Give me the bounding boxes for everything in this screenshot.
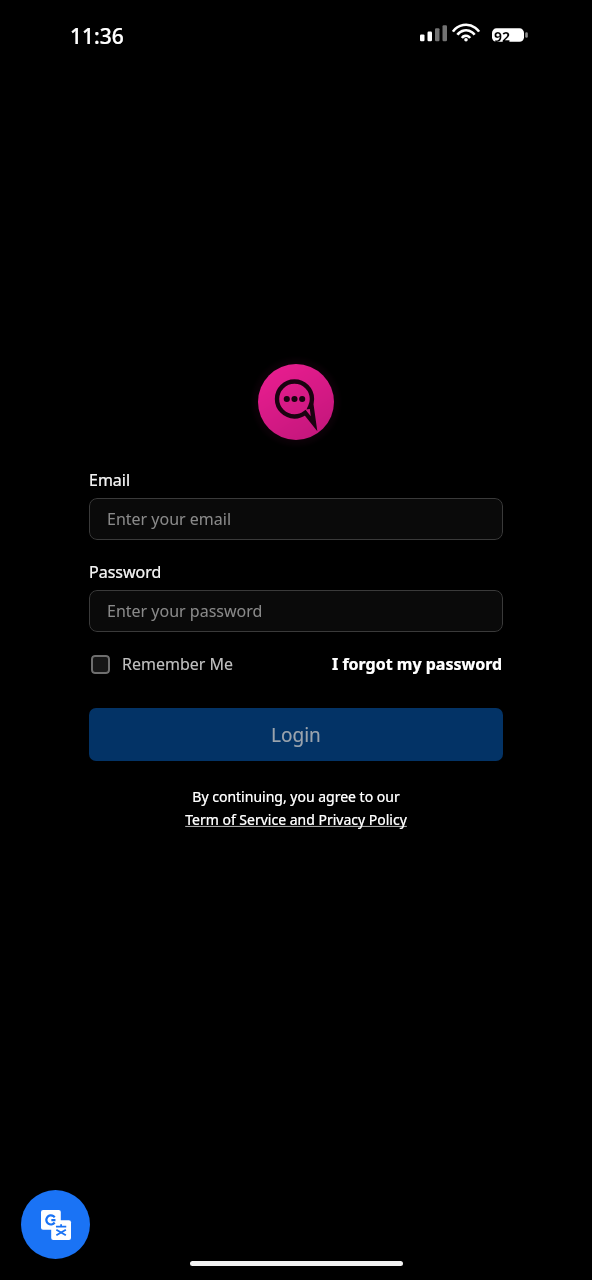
- button[interactable]: Remember Me: [89, 649, 236, 679]
- staticText: Enter your password: [107, 600, 263, 622]
- staticText: Remember Me: [122, 653, 234, 675]
- staticText: By continuing, you agree to our: [192, 787, 400, 806]
- button[interactable]: Enter your email: [89, 498, 503, 540]
- staticText: Password: [89, 561, 162, 583]
- staticText: Term of Service and Privacy Policy: [185, 810, 407, 829]
- staticText: Email: [89, 469, 131, 491]
- staticText: I forgot my password: [332, 653, 503, 675]
- button[interactable]: Enter your password: [89, 590, 503, 632]
- button[interactable]: I forgot my password: [332, 649, 503, 679]
- staticText: Enter your email: [107, 508, 232, 530]
- staticText: 92: [494, 27, 511, 46]
- staticText: Login: [271, 722, 321, 748]
- button[interactable]: Term of Service and Privacy Policy: [185, 810, 407, 829]
- button[interactable]: Translate: [21, 1190, 90, 1259]
- staticText: 11:36: [70, 22, 124, 51]
- button[interactable]: Login: [89, 708, 503, 761]
